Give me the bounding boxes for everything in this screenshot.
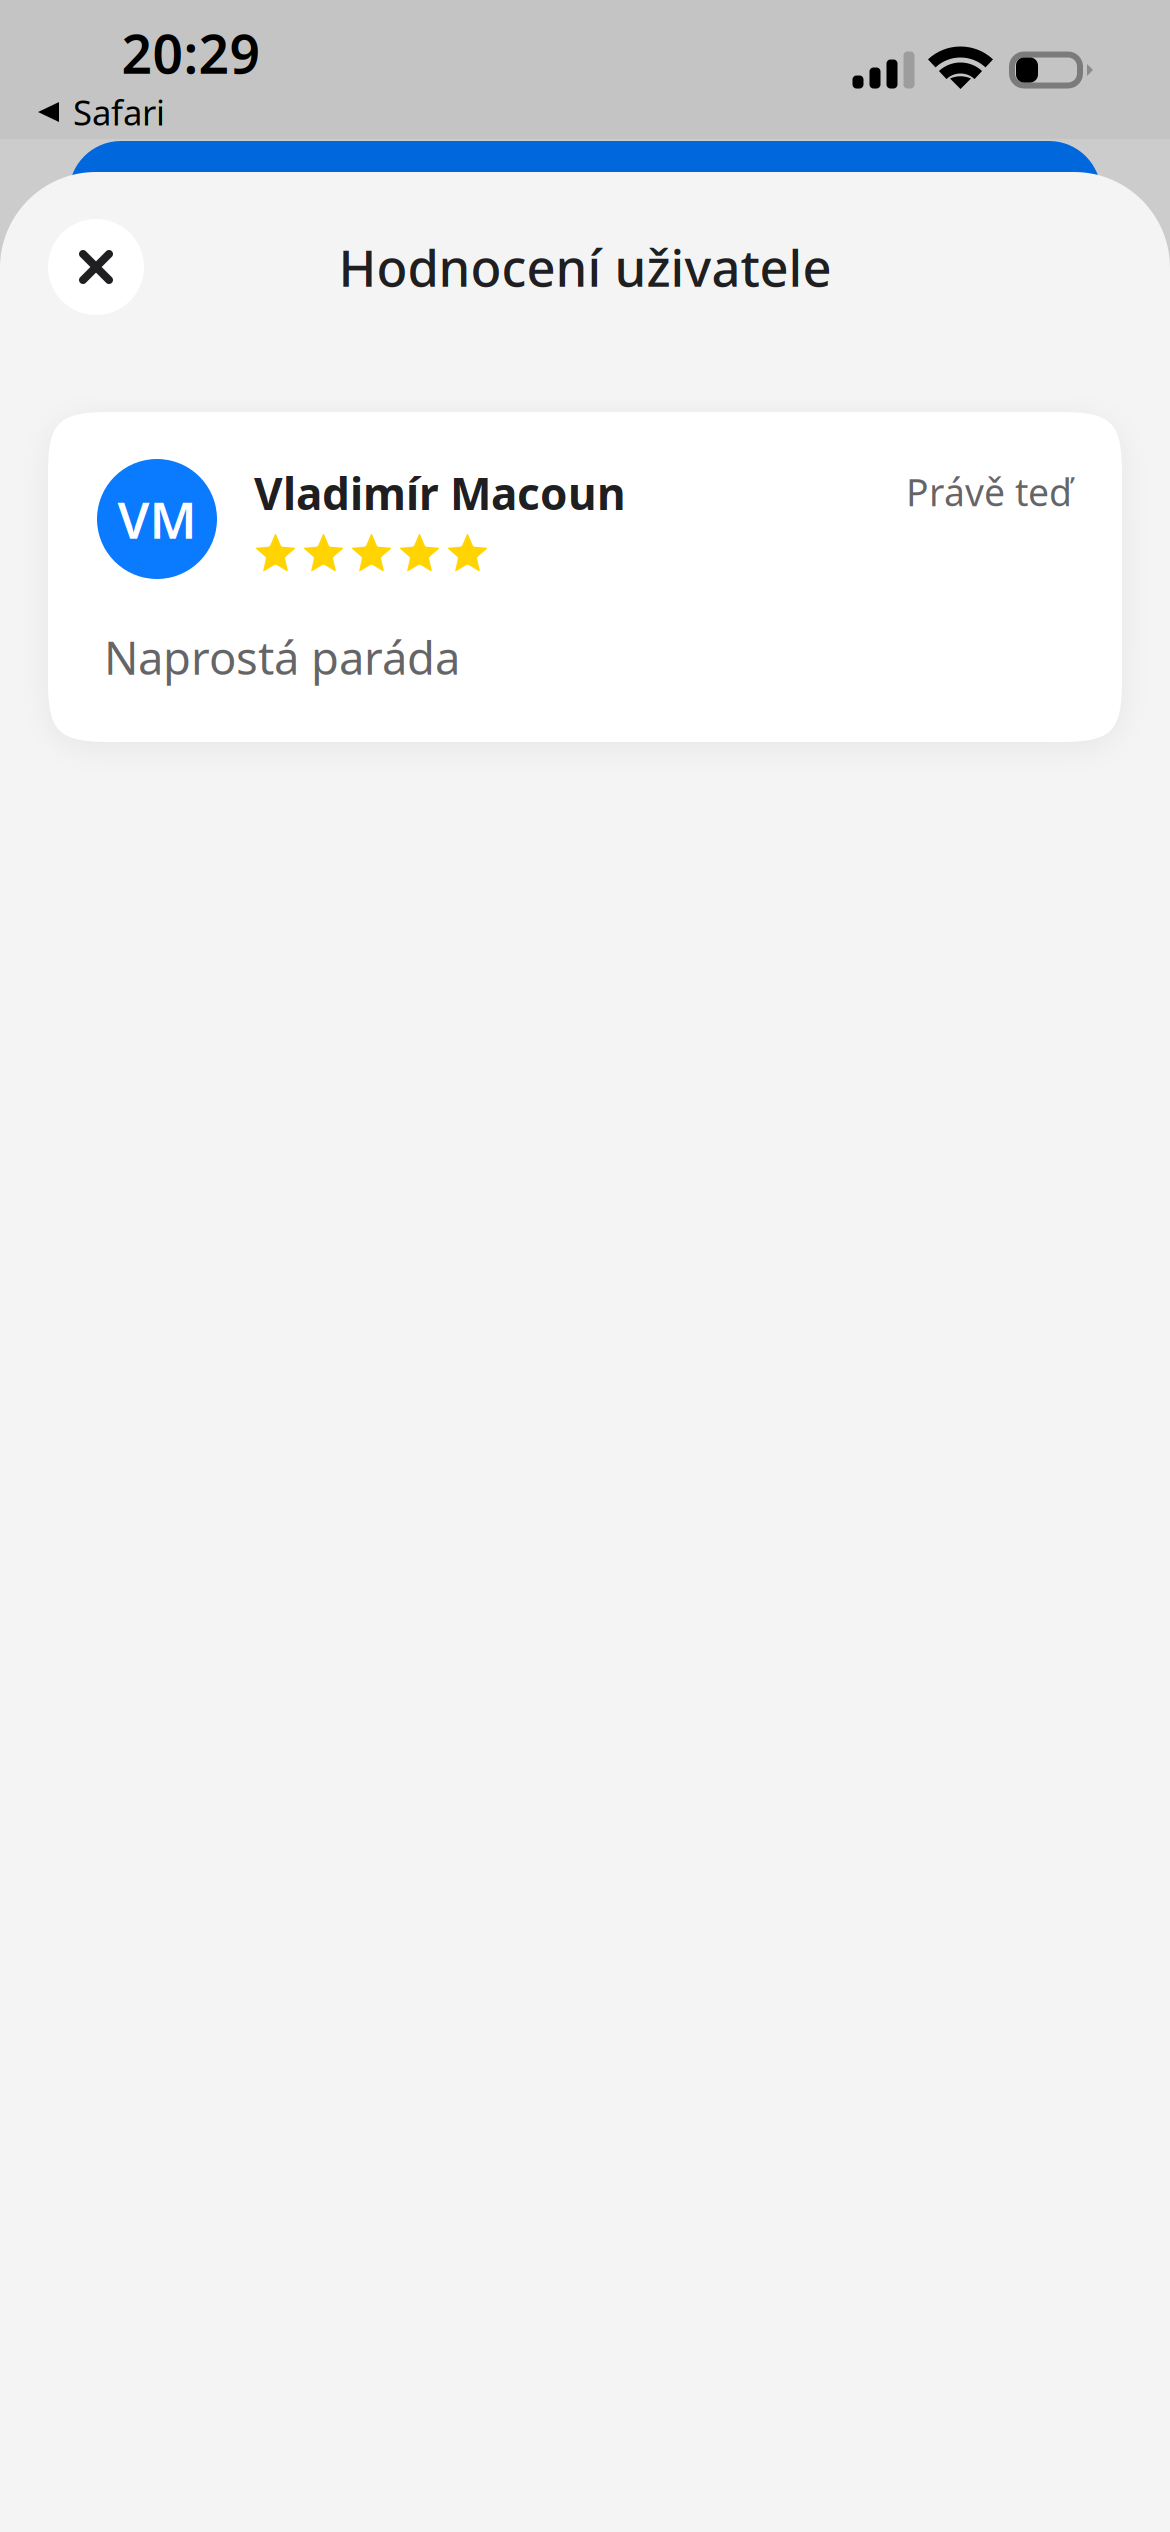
staticText: Hodnocení uživatele bbox=[338, 233, 831, 301]
staticText: VM bbox=[117, 485, 196, 553]
staticText: Vladimír Macoun bbox=[254, 464, 626, 522]
staticText: Právě teď bbox=[906, 467, 1072, 517]
staticText: Naprostá paráda bbox=[104, 627, 460, 687]
button[interactable]: Close bbox=[48, 219, 144, 315]
staticText: 20:29 bbox=[121, 18, 260, 88]
staticText: Safari bbox=[73, 89, 165, 135]
button[interactable]: Back to Safari bbox=[30, 83, 173, 141]
